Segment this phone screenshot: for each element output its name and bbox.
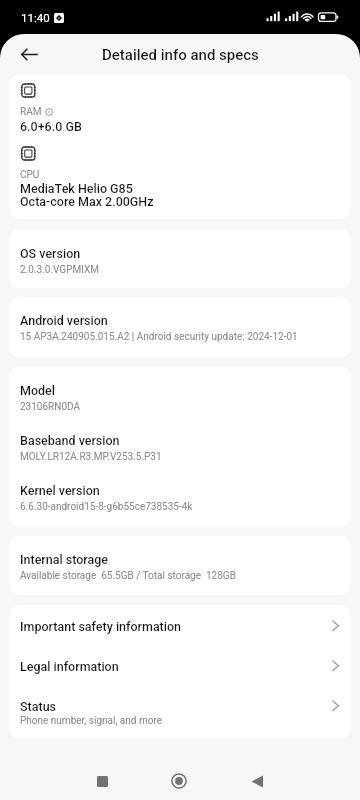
staticText: Baseband version	[20, 433, 120, 448]
staticText: 6.6.30-android15-8-g6b55ce738535-4k	[20, 501, 193, 513]
button[interactable]: Important safety information	[9, 605, 351, 634]
button[interactable]: Recents	[79, 762, 125, 800]
staticText: Detailed info and specs	[102, 46, 259, 64]
staticText: Phone number, signal, and more	[20, 715, 162, 727]
staticText: Internal storage	[20, 552, 109, 567]
button[interactable]: Status	[9, 674, 351, 727]
staticText: Status	[20, 699, 57, 714]
button[interactable]: Home	[156, 762, 202, 800]
staticText: Legal information	[20, 659, 119, 674]
staticText: Model	[20, 383, 55, 398]
staticText: MediaTek Helio G85 Octa-core Max 2.00GHz	[20, 181, 154, 209]
staticText: CPU	[20, 169, 40, 181]
staticText: MOLY.LR12A.R3.MP.V253.5.P31	[20, 451, 162, 463]
button[interactable]: Legal information	[9, 634, 351, 674]
staticText: 11:40	[21, 11, 50, 24]
button[interactable]: Back	[10, 35, 49, 74]
staticText: 6.0+6.0 GB	[20, 119, 82, 134]
button[interactable]: Back	[234, 762, 280, 800]
staticText: 15 AP3A.240905.015.A2 | Android security…	[20, 331, 298, 343]
staticText: RAM	[20, 106, 42, 118]
staticText: OS version	[20, 246, 81, 261]
staticText: Kernel version	[20, 483, 100, 498]
staticText: 2.0.3.0.VGPMIXM	[20, 264, 99, 276]
staticText: Available storage 65.5GB / Total storage…	[20, 570, 236, 582]
staticText: Important safety information	[20, 619, 182, 634]
staticText: 23106RN0DA	[20, 401, 80, 413]
staticText: Android version	[20, 313, 108, 328]
